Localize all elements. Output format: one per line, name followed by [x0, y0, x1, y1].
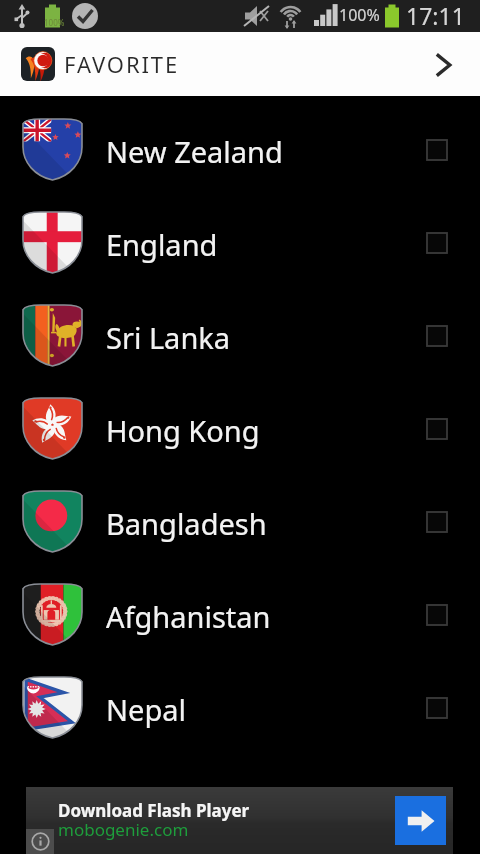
button[interactable]: New Zealand: [0, 103, 480, 196]
staticText: Hong Kong: [106, 411, 260, 450]
button[interactable]: Go: [395, 796, 446, 845]
button[interactable]: Afghanistan: [0, 568, 480, 661]
staticText: Bangladesh: [106, 504, 267, 543]
staticText: New Zealand: [106, 132, 283, 171]
staticText: FAVORITE: [64, 49, 180, 79]
button[interactable]: Favorite New Zealand: [414, 127, 460, 173]
button[interactable]: Sri Lanka: [0, 289, 480, 382]
button[interactable]: Favorite Hong Kong: [414, 406, 460, 452]
button[interactable]: Favorite Nepal: [414, 685, 460, 731]
button[interactable]: Favorite Sri Lanka: [414, 313, 460, 359]
button[interactable]: FAVORITE: [0, 32, 480, 96]
button[interactable]: Bangladesh: [0, 475, 480, 568]
staticText: Nepal: [106, 690, 186, 729]
staticText: Sri Lanka: [106, 318, 231, 357]
button[interactable]: Download Flash Player: [26, 787, 453, 854]
staticText: England: [106, 225, 218, 264]
button[interactable]: More: [418, 40, 466, 88]
staticText: 17:11: [406, 0, 465, 31]
button[interactable]: Favorite England: [414, 220, 460, 266]
button[interactable]: England: [0, 196, 480, 289]
staticText: 100%: [339, 4, 380, 26]
staticText: mobogenie.com: [58, 818, 189, 841]
button[interactable]: Favorite Afghanistan: [414, 592, 460, 638]
staticText: Download Flash Player: [58, 799, 250, 822]
staticText: Afghanistan: [106, 597, 271, 636]
button[interactable]: Nepal: [0, 661, 480, 754]
button[interactable]: Hong Kong: [0, 382, 480, 475]
button[interactable]: Favorite Bangladesh: [414, 499, 460, 545]
staticText: 100%: [44, 17, 65, 28]
